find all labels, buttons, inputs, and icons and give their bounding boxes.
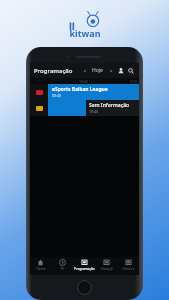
button[interactable]: eSports Balkan League <box>30 84 139 100</box>
button[interactable]: Filmes e <box>117 257 139 275</box>
button[interactable]: Sem Informação <box>30 100 139 116</box>
staticText: 10:00 <box>79 79 88 84</box>
staticText: 10:40 <box>89 109 98 114</box>
staticText: eSports Balkan League <box>52 86 108 93</box>
button[interactable]: Home <box>77 280 92 295</box>
staticText: TV <box>60 267 64 271</box>
button[interactable]: Dia seguinte <box>106 66 115 75</box>
staticText: 09:40 <box>52 93 61 98</box>
staticText: Gravaçõ <box>100 267 113 271</box>
button[interactable]: Programação <box>73 257 95 275</box>
button[interactable]: Home <box>30 257 51 275</box>
staticText: Programação <box>74 267 95 271</box>
button[interactable]: Hoje <box>91 67 104 74</box>
button[interactable]: Pesquisar <box>127 65 135 76</box>
staticText: Hoje <box>92 67 103 74</box>
staticText: kitwan <box>69 27 101 39</box>
staticText: Home <box>36 267 46 271</box>
button[interactable]: Perfil <box>115 65 126 76</box>
staticText: Filmes e <box>122 267 135 271</box>
button[interactable]: TV <box>51 257 73 275</box>
button[interactable]: Dia anterior <box>80 66 89 75</box>
button[interactable]: Gravaçõ <box>95 257 117 275</box>
staticText: Programação <box>34 67 73 75</box>
staticText: 11:0 <box>130 79 137 84</box>
staticText: Sem Informação <box>89 102 130 109</box>
